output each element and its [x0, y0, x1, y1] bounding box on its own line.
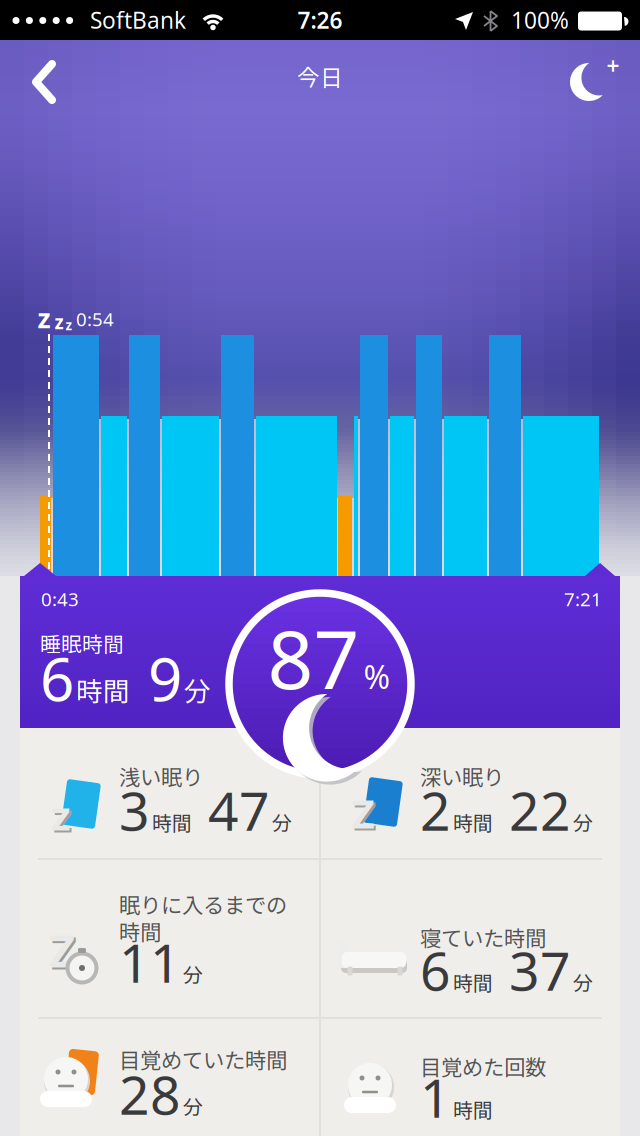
staticText: 87	[267, 605, 359, 711]
staticText: 時間	[76, 670, 130, 709]
staticText: 目覚めた回数	[420, 1051, 546, 1081]
staticText: 6	[40, 638, 74, 718]
staticText: 7:26	[297, 5, 342, 35]
staticText: 時間	[453, 967, 493, 996]
staticText: 3	[119, 775, 150, 845]
staticText: 1	[420, 1062, 451, 1132]
staticText: 分	[272, 807, 292, 836]
staticText: 0:54	[76, 307, 114, 331]
staticText: 時間	[453, 1094, 493, 1123]
staticText: z	[54, 310, 63, 334]
staticText: +	[606, 51, 619, 81]
staticText: 今日	[297, 60, 343, 92]
staticText: z	[65, 316, 72, 334]
staticText: 22	[495, 775, 571, 845]
staticText: z	[51, 788, 71, 841]
staticText: 眠りに入るまでの	[119, 889, 287, 919]
staticText: 睡眠時間	[40, 628, 124, 658]
staticText: 6	[420, 935, 451, 1005]
staticText: 時間	[453, 807, 493, 836]
staticText: 2	[420, 775, 451, 845]
staticText: Z	[353, 788, 376, 841]
staticText: 37	[495, 935, 571, 1005]
staticText: 0:43	[41, 587, 79, 611]
staticText: Z	[49, 920, 75, 980]
staticText: z	[37, 300, 50, 336]
staticText: 分	[183, 1091, 203, 1120]
staticText: 目覚めていた時間	[119, 1044, 287, 1074]
staticText: 時間	[152, 807, 192, 836]
staticText: 7:21	[564, 587, 602, 611]
button[interactable]: Add sleep	[571, 55, 623, 107]
staticText: 時間	[119, 916, 161, 946]
staticText: SoftBank	[90, 5, 186, 35]
staticText: 深い眠り	[420, 761, 504, 791]
staticText: 浅い眠り	[119, 761, 203, 791]
button[interactable]: Back	[22, 58, 70, 106]
staticText: 分	[573, 807, 593, 836]
staticText: 分	[184, 670, 211, 709]
staticText: 28	[119, 1059, 181, 1129]
staticText: %	[363, 655, 390, 698]
staticText: Z	[51, 922, 77, 982]
staticText: 分	[573, 967, 593, 996]
staticText: 47	[194, 775, 270, 845]
staticText: 寝ていた時間	[420, 922, 546, 952]
staticText: 11	[119, 927, 181, 997]
staticText: z	[53, 790, 73, 843]
staticText: 100%	[511, 5, 569, 35]
staticText: Z	[351, 786, 374, 839]
staticText: 分	[183, 959, 203, 988]
staticText: 9	[132, 638, 182, 718]
